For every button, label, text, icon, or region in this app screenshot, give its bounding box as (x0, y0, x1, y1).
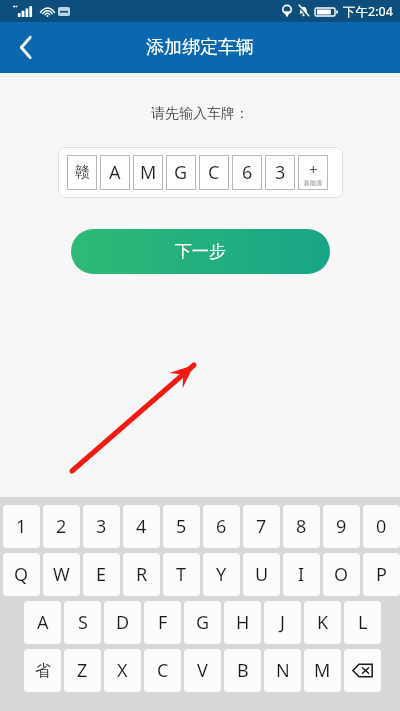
button[interactable]: Z (64, 649, 101, 692)
button[interactable]: I (283, 553, 320, 596)
staticText: 1 (16, 514, 27, 539)
staticText: D (116, 610, 130, 635)
staticText: K (317, 610, 329, 635)
staticText: J (280, 610, 285, 635)
button[interactable]: G (166, 155, 196, 190)
staticText: 3 (96, 514, 107, 539)
button[interactable]: 3 (265, 155, 295, 190)
staticText: 省 (35, 661, 51, 681)
staticText: W (53, 562, 70, 587)
staticText: P (376, 562, 387, 587)
staticText: E (96, 562, 107, 587)
button[interactable]: Backspace (344, 649, 381, 692)
staticText: 7 (256, 514, 267, 539)
staticText: C (157, 658, 169, 683)
button[interactable]: 3 (83, 505, 120, 548)
staticText: Y (216, 562, 227, 587)
staticText: 请先输入车牌： (0, 105, 400, 123)
staticText: 新能源 (304, 179, 322, 187)
staticText: R (136, 562, 148, 587)
button[interactable]: 6 (203, 505, 240, 548)
button[interactable]: Q (3, 553, 40, 596)
button[interactable]: 7 (243, 505, 280, 548)
staticText: V (197, 658, 208, 683)
staticText: 4 (136, 514, 147, 539)
staticText: C (208, 160, 220, 185)
staticText: G (174, 160, 188, 185)
button[interactable]: 9 (323, 505, 360, 548)
staticText: B (237, 658, 249, 683)
button[interactable]: 赣 (67, 155, 97, 190)
button[interactable]: 省 (24, 649, 61, 692)
button[interactable]: C (199, 155, 229, 190)
staticText: O (334, 562, 349, 587)
staticText: T (176, 562, 187, 587)
staticText: 2 (56, 514, 67, 539)
button[interactable]: Y (203, 553, 240, 596)
staticText: G (196, 610, 210, 635)
button[interactable]: 0 (363, 505, 400, 548)
staticText: Z (77, 658, 88, 683)
button[interactable]: U (243, 553, 280, 596)
staticText: F (158, 610, 168, 635)
button[interactable]: E (83, 553, 120, 596)
staticText: L (358, 610, 368, 635)
button[interactable]: 6 (232, 155, 262, 190)
staticText: I (298, 562, 305, 587)
button[interactable]: 2 (43, 505, 80, 548)
button[interactable]: N (264, 649, 301, 692)
button[interactable]: C (144, 649, 181, 692)
button[interactable]: T (163, 553, 200, 596)
button[interactable]: Back (0, 22, 52, 73)
button[interactable]: G (184, 601, 221, 644)
staticText: Q (14, 562, 29, 587)
staticText: 3 (275, 160, 286, 185)
button[interactable]: 下一步 (71, 229, 330, 274)
button[interactable]: V (184, 649, 221, 692)
staticText: S (78, 610, 88, 635)
button[interactable]: R (123, 553, 160, 596)
staticText: A (37, 610, 49, 635)
staticText: M (140, 160, 157, 185)
staticText: 赣 (75, 163, 90, 182)
staticText: M (314, 658, 331, 683)
staticText: X (117, 658, 128, 683)
button[interactable]: J (264, 601, 301, 644)
staticText: A (109, 160, 121, 185)
staticText: + (309, 159, 318, 179)
staticText: 0 (376, 514, 387, 539)
button[interactable]: A (100, 155, 130, 190)
staticText: 6 (242, 160, 253, 185)
button[interactable]: 8 (283, 505, 320, 548)
button[interactable]: + (298, 155, 328, 190)
staticText: U (255, 562, 269, 587)
staticText: H (236, 610, 250, 635)
button[interactable]: X (104, 649, 141, 692)
staticText: 下午2:04 (343, 3, 393, 20)
staticText: 5 (176, 514, 187, 539)
button[interactable]: S (64, 601, 101, 644)
button[interactable]: D (104, 601, 141, 644)
button[interactable]: 4 (123, 505, 160, 548)
button[interactable]: O (323, 553, 360, 596)
button[interactable]: K (304, 601, 341, 644)
button[interactable]: P (363, 553, 400, 596)
staticText: 9 (336, 514, 347, 539)
staticText: 8 (296, 514, 307, 539)
button[interactable]: F (144, 601, 181, 644)
button[interactable]: M (133, 155, 163, 190)
staticText: N (276, 658, 290, 683)
button[interactable]: L (344, 601, 381, 644)
button[interactable]: H (224, 601, 261, 644)
button[interactable]: A (24, 601, 61, 644)
button[interactable]: B (224, 649, 261, 692)
button[interactable]: 5 (163, 505, 200, 548)
button[interactable]: M (304, 649, 341, 692)
staticText: 添加绑定车辆 (146, 36, 254, 59)
staticText: 下一步 (175, 241, 226, 262)
staticText: 6 (216, 514, 227, 539)
button[interactable]: 1 (3, 505, 40, 548)
button[interactable]: W (43, 553, 80, 596)
